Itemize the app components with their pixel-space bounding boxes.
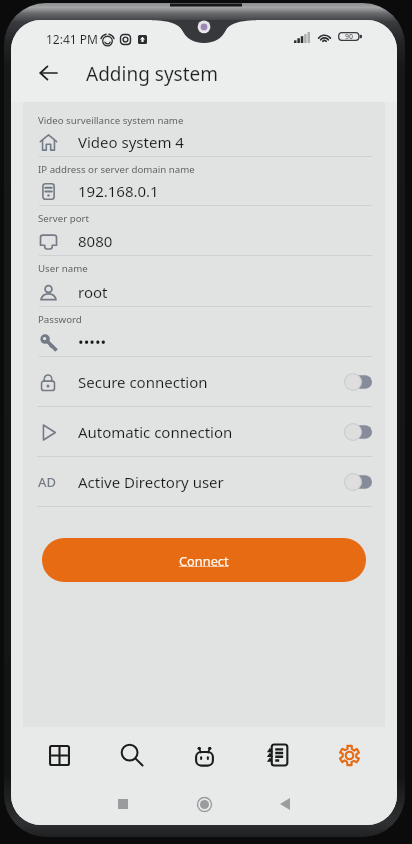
- button[interactable]: Connect: [42, 538, 366, 582]
- button[interactable]: AD: [37, 457, 372, 506]
- staticText: 8080: [78, 231, 113, 251]
- button[interactable]: Settings: [327, 733, 371, 777]
- button[interactable]: Home: [187, 787, 221, 821]
- button[interactable]: Dashboard: [37, 733, 81, 777]
- staticText: Automatic connection: [78, 422, 233, 442]
- staticText: Connect: [179, 552, 229, 569]
- staticText: 192.168.0.1: [78, 181, 159, 201]
- staticText: Server port: [38, 212, 90, 225]
- staticText: root: [78, 282, 108, 302]
- staticText: 12:41 PM: [46, 31, 98, 47]
- staticText: Video surveillance system name: [38, 114, 184, 127]
- staticText: Password: [38, 313, 82, 326]
- staticText: User name: [38, 262, 88, 275]
- button[interactable]: Back: [268, 787, 302, 821]
- button[interactable]: Back: [29, 54, 67, 92]
- staticText: •••••: [78, 332, 107, 352]
- staticText: Active Directory user: [78, 472, 224, 492]
- button[interactable]: Automatic connection: [37, 407, 372, 456]
- button[interactable]: Search: [110, 733, 154, 777]
- button[interactable]: Secure connection: [37, 357, 372, 406]
- staticText: Video system 4: [78, 132, 184, 152]
- button[interactable]: Recents: [106, 787, 140, 821]
- button[interactable]: Devices: [182, 733, 226, 777]
- staticText: Adding system: [86, 61, 219, 87]
- button[interactable]: Journal: [255, 733, 299, 777]
- staticText: IP address or server domain name: [38, 163, 195, 176]
- staticText: Secure connection: [78, 372, 208, 392]
- staticText: AD: [38, 473, 57, 491]
- staticText: 90: [345, 32, 354, 42]
